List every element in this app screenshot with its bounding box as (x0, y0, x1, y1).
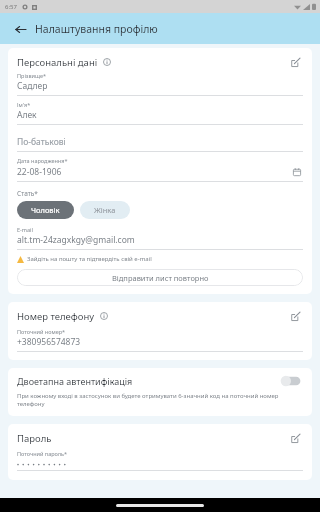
staticText: Поточний пароль* (17, 450, 68, 457)
staticText: alt.tm-24zagxkgy@gmail.com (17, 234, 303, 246)
staticText: Алек (17, 109, 303, 121)
button[interactable]: Info (98, 310, 110, 322)
staticText: Зайдіть на пошту та підтвердіть свій e-m… (27, 255, 152, 263)
button[interactable]: Back (10, 19, 30, 39)
staticText: По-батькові (17, 136, 303, 148)
staticText: Поточний номер* (17, 328, 66, 335)
staticText: Персональні дані (17, 56, 98, 69)
button[interactable]: Info (101, 56, 113, 68)
staticText: 6:57 (5, 3, 17, 11)
staticText: При кожному вході в застосунок ви будете… (17, 392, 303, 408)
button[interactable]: Жінка (80, 201, 130, 219)
staticText: Номер телефону (17, 310, 95, 323)
button[interactable]: Чоловік (17, 201, 74, 219)
button[interactable]: Edit (287, 308, 303, 324)
staticText: +380956574873 (17, 336, 303, 348)
staticText: Пароль (17, 432, 52, 445)
button[interactable]: Відправити лист повторно (17, 269, 303, 286)
button[interactable]: Two-factor authentication toggle (277, 374, 303, 388)
button[interactable]: Pick date (290, 165, 303, 178)
staticText: Дата народження* (17, 157, 68, 164)
staticText: Двоетапна автентифікація (17, 375, 277, 387)
button[interactable]: Edit (287, 430, 303, 446)
button[interactable]: Edit (287, 54, 303, 70)
staticText: Прізвище* (17, 72, 46, 79)
staticText: Стать* (17, 189, 38, 198)
staticText: E-mail (17, 226, 33, 233)
staticText: Садлер (17, 80, 303, 92)
staticText: Налаштування профілю (35, 22, 158, 36)
staticText: Ім'я* (17, 101, 31, 108)
staticText: Відправити лист повторно (112, 273, 209, 283)
staticText: 22-08-1906 (17, 166, 290, 178)
staticText: Жінка (94, 205, 116, 215)
staticText: Чоловік (31, 205, 60, 215)
